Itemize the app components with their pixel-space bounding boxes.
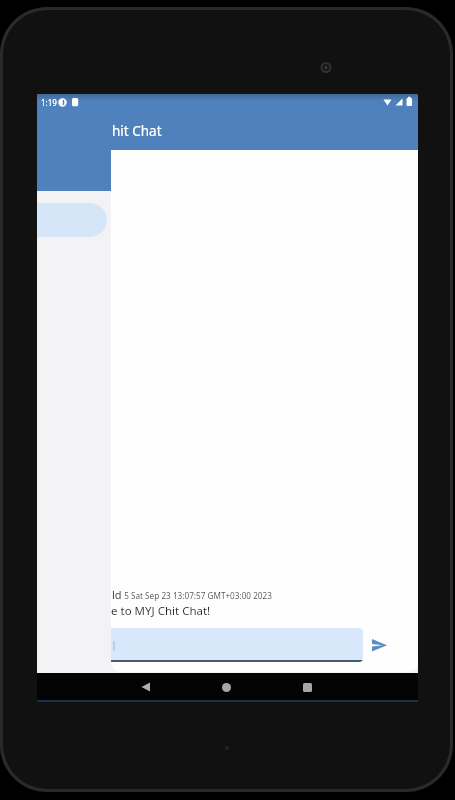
staticText: 1:19 [41, 97, 57, 108]
button[interactable] [141, 682, 151, 692]
button[interactable] [372, 639, 387, 652]
button[interactable] [111, 628, 363, 662]
staticText: e to MYJ Chit Chat! [111, 603, 211, 619]
button[interactable] [303, 683, 312, 692]
staticText: hit Chat [112, 122, 162, 140]
button[interactable]: hit Chat [111, 112, 418, 150]
staticText: ld [112, 587, 122, 602]
staticText: 5 Sat Sep 23 13:07:57 GMT+03:00 2023 [122, 590, 272, 601]
button[interactable] [222, 683, 231, 692]
